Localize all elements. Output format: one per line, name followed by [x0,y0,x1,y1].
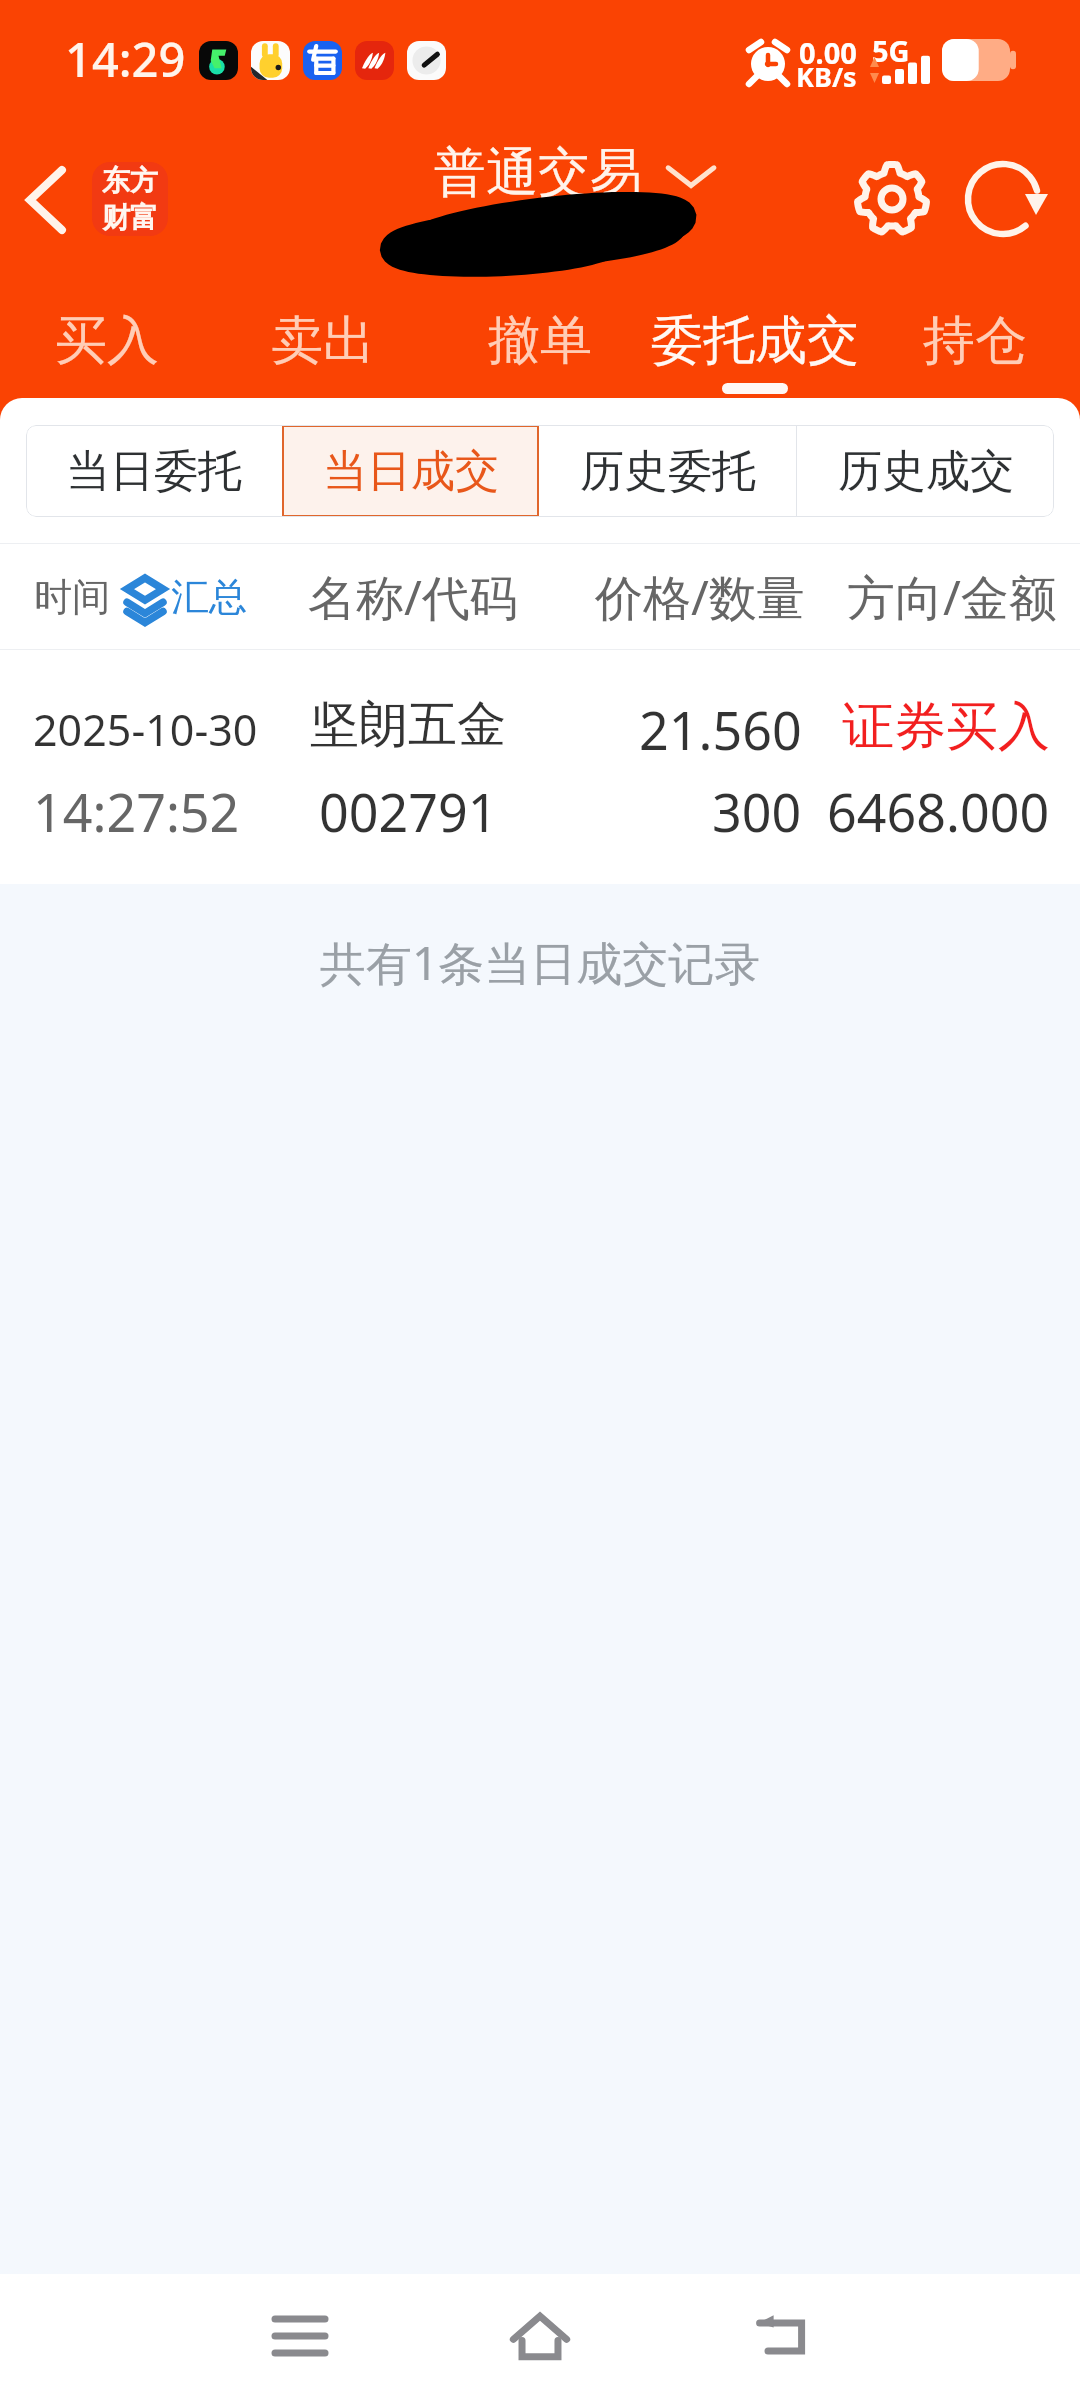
button[interactable]: Back [0,154,92,246]
staticText: 2025-10-30 [33,700,258,759]
staticText: 普通交易 [434,140,642,206]
staticText: 委托成交 [651,308,859,374]
staticText: 共有1条当日成交记录 [320,931,761,994]
button[interactable]: 普通交易 [434,140,716,206]
staticText: 证券买入 [842,694,1050,760]
button[interactable]: 买入 [51,308,163,398]
staticText: 坚朗五金 [310,694,506,756]
button[interactable]: East Money [92,162,168,236]
staticText: 5G [872,31,910,70]
staticText: 持仓 [923,308,1027,374]
staticText: 价格/数量 [595,564,805,630]
staticText: 时间 [34,573,110,621]
button[interactable]: Back [722,2274,842,2400]
staticText: 14:27:52 [33,776,240,847]
button[interactable]: 2025-10-30 [0,650,1080,884]
button[interactable]: Settings [846,153,938,245]
staticText: 买入 [55,308,159,374]
staticText: 6468.000 [827,776,1050,847]
button[interactable]: 当日委托 [26,425,282,517]
staticText: 东方 [102,163,158,198]
button[interactable]: 卖出 [267,308,379,398]
button[interactable]: 历史委托 [539,425,796,517]
button[interactable]: Home [480,2274,600,2400]
staticText: 撤单 [488,308,592,374]
button[interactable]: 撤单 [484,308,596,398]
button[interactable]: 委托成交 [647,308,863,398]
staticText: 历史委托 [580,444,756,499]
button[interactable]: 历史成交 [797,425,1054,517]
button[interactable]: Recents [240,2274,360,2400]
staticText: 历史成交 [838,444,1014,499]
button[interactable]: 持仓 [919,308,1031,398]
staticText: 300 [712,776,802,847]
staticText: 财富 [102,200,158,235]
staticText: KB/s [796,58,857,95]
staticText: 002791 [319,776,498,847]
staticText: 汇总 [171,573,247,621]
button[interactable]: 汇总 [124,573,247,621]
staticText: 方向/金额 [847,564,1057,630]
button[interactable]: 当日成交 [282,425,539,517]
button[interactable]: Refresh [961,153,1053,245]
staticText: 0.00 [799,33,857,72]
staticText: 当日成交 [323,444,499,499]
staticText: 21.560 [639,694,802,765]
staticText: 卖出 [271,308,375,374]
staticText: 名称/代码 [308,564,518,630]
staticText: 14:29 [65,27,186,91]
staticText: 当日委托 [66,444,242,499]
